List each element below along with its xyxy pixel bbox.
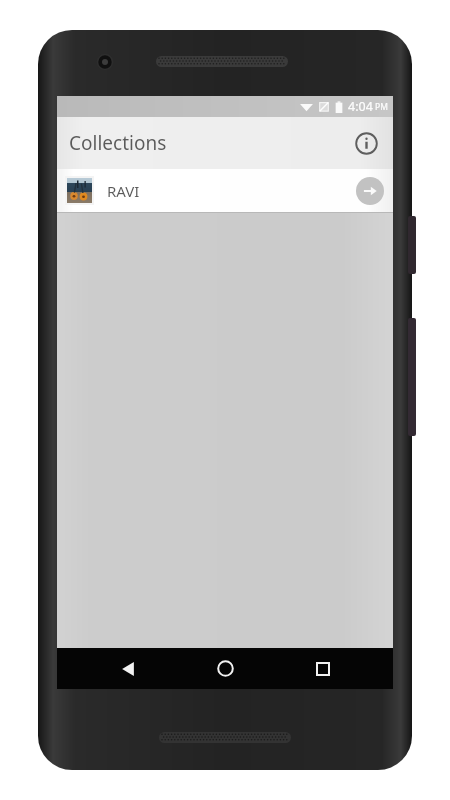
button[interactable]: Info <box>347 124 385 162</box>
staticText: 4:04 <box>348 98 373 115</box>
button[interactable]: Back <box>101 648 155 689</box>
button[interactable]: Open collection <box>356 177 384 205</box>
staticText: PM <box>375 101 388 113</box>
staticText: Collections <box>69 130 167 156</box>
staticText: RAVI <box>107 181 140 201</box>
button[interactable]: Home <box>198 648 252 689</box>
button[interactable]: Recent apps <box>296 648 350 689</box>
button[interactable]: RAVI <box>57 169 393 212</box>
